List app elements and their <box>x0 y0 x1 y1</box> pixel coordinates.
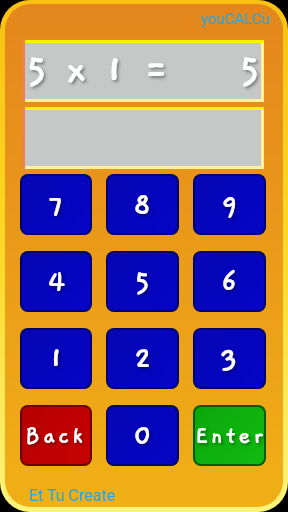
staticText: 2 <box>134 342 152 376</box>
staticText: Back <box>25 423 87 449</box>
staticText: 5 <box>239 49 261 93</box>
button[interactable]: 9 <box>195 176 264 233</box>
staticText: Enter <box>195 423 264 449</box>
button[interactable]: 4 <box>22 253 90 310</box>
staticText: 5 x 1 = <box>26 49 170 93</box>
button[interactable]: Back <box>22 407 90 464</box>
button[interactable]: 5 <box>108 253 177 310</box>
button[interactable]: 3 <box>195 330 264 387</box>
staticText: 5 <box>134 265 151 299</box>
button[interactable]: 0 <box>108 407 177 464</box>
staticText: Et Tu Create <box>29 486 116 505</box>
button[interactable]: 7 <box>22 176 90 233</box>
button[interactable]: 1 <box>22 330 90 387</box>
staticText: 3 <box>220 342 239 376</box>
button[interactable]: 2 <box>108 330 177 387</box>
staticText: 7 <box>48 188 65 222</box>
staticText: 9 <box>221 188 239 222</box>
staticText: 6 <box>221 265 238 299</box>
staticText: 8 <box>133 188 152 222</box>
button[interactable]: 6 <box>195 253 264 310</box>
staticText: 0 <box>133 419 153 453</box>
button[interactable]: 8 <box>108 176 177 233</box>
staticText: youCALCu <box>201 10 270 28</box>
staticText: 4 <box>47 265 66 299</box>
button[interactable]: Enter <box>195 407 264 464</box>
staticText: 1 <box>49 342 64 376</box>
